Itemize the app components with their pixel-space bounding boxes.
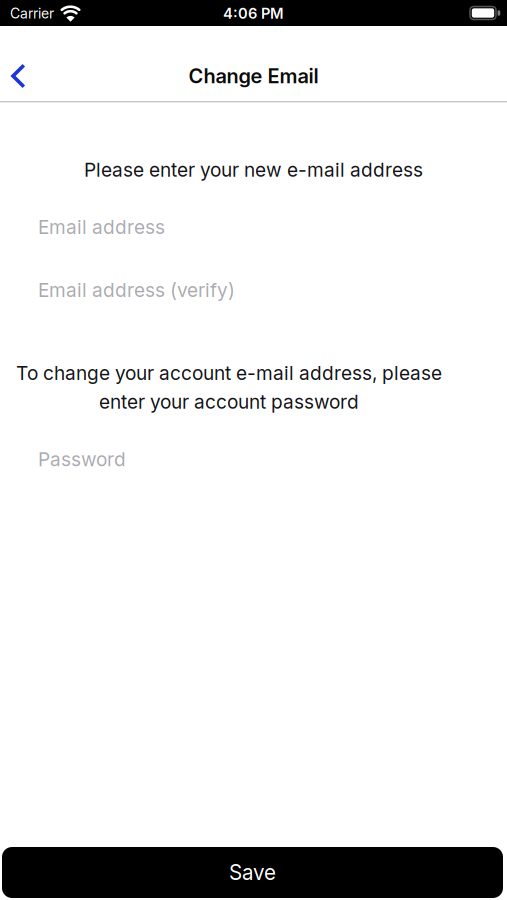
staticText: enter your account password (99, 390, 359, 413)
button[interactable]: Email address (0, 215, 507, 239)
staticText: To change your account e-mail address, p… (16, 362, 442, 385)
button[interactable]: Password (0, 448, 507, 471)
button[interactable]: Save (2, 847, 503, 898)
button[interactable]: Email address (verify) (0, 278, 507, 302)
staticText: Change Email (188, 64, 318, 88)
button[interactable]: Back (0, 38, 44, 88)
staticText: Email address (38, 215, 165, 239)
staticText: Password (38, 448, 126, 471)
staticText: Please enter your new e-mail address (84, 158, 423, 181)
staticText: 4:06 PM (223, 5, 284, 22)
staticText: Carrier (10, 5, 54, 22)
staticText: Save (229, 860, 276, 885)
staticText: Email address (verify) (38, 278, 235, 302)
